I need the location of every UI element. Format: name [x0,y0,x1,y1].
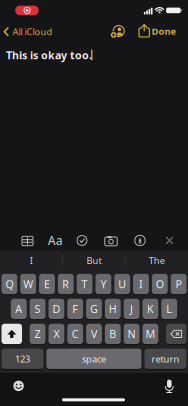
button[interactable]: S [30,299,46,319]
button[interactable]: I [133,274,149,294]
staticText: Y [100,277,106,291]
button[interactable]: 123 [1,349,43,369]
staticText: D [52,302,60,316]
staticText: F [72,302,78,316]
button[interactable]: X [48,324,64,344]
button[interactable]: V [86,324,102,344]
button[interactable]: R [58,274,74,294]
button[interactable]: Q [1,274,17,294]
button[interactable]: O [152,274,168,294]
button[interactable]: P [171,274,187,294]
staticText: I [139,277,143,291]
button[interactable]: Close [166,237,173,244]
staticText: E [44,277,50,291]
button[interactable]: T [77,274,92,294]
button[interactable]: Checklist [76,235,87,246]
button[interactable]: Add People [110,24,126,38]
button[interactable]: W [20,274,36,294]
staticText: P [176,277,182,291]
staticText: Z [35,327,41,341]
staticText: S [35,302,41,316]
staticText: V [91,327,97,341]
staticText: space [82,353,106,365]
button[interactable]: space [46,349,141,369]
staticText: The [149,254,165,267]
button[interactable]: Back [3,24,67,40]
staticText: This is okay too. [6,48,92,62]
button[interactable]: The [129,250,185,270]
staticText: R [62,277,69,291]
staticText: O [156,277,164,291]
staticText: All iCloud [12,25,52,38]
staticText: 123 [15,353,30,365]
staticText: B [109,327,116,341]
staticText: N [128,327,136,341]
button[interactable]: Markup [134,235,145,246]
staticText: But [86,254,101,267]
button[interactable]: G [86,299,102,319]
button[interactable]: Z [30,324,46,344]
button[interactable]: Done [136,23,176,39]
button[interactable]: F [67,299,83,319]
button[interactable]: C [67,324,83,344]
button[interactable]: Y [95,274,111,294]
staticText: L [166,302,172,316]
button[interactable]: Share [138,24,150,38]
staticText: T [82,277,88,291]
staticText: K [147,302,154,316]
button[interactable]: A [11,299,27,319]
staticText: I [30,254,33,267]
button[interactable]: But [66,250,122,270]
staticText: Done [151,25,176,37]
staticText: X [53,327,59,341]
button[interactable]: I [3,250,59,270]
staticText: return [151,353,179,365]
button[interactable]: U [114,274,130,294]
button[interactable]: D [48,299,64,319]
button[interactable]: Insert Table [21,235,33,246]
button[interactable]: J [124,299,139,319]
button[interactable]: return [144,349,186,369]
button[interactable]: L [161,299,177,319]
staticText: Aa [48,232,63,248]
staticText: H [109,302,117,316]
button[interactable]: Emoji [13,381,24,391]
button[interactable]: M [142,324,158,344]
staticText: Q [5,277,13,291]
staticText: W [23,277,33,291]
staticText: J [130,302,133,316]
button[interactable]: Dictate [165,379,173,393]
button[interactable]: Format [47,234,63,246]
button[interactable]: Delete [166,324,186,344]
button[interactable]: E [39,274,55,294]
staticText: A [15,302,22,316]
button[interactable]: B [105,324,121,344]
button[interactable]: H [105,299,121,319]
staticText: U [118,277,126,291]
button[interactable]: Shift [1,324,22,344]
button[interactable]: K [142,299,158,319]
button[interactable]: Camera [104,235,118,246]
staticText: G [90,302,98,316]
button[interactable]: N [124,324,139,344]
staticText: M [145,327,155,341]
staticText: C [72,327,79,341]
